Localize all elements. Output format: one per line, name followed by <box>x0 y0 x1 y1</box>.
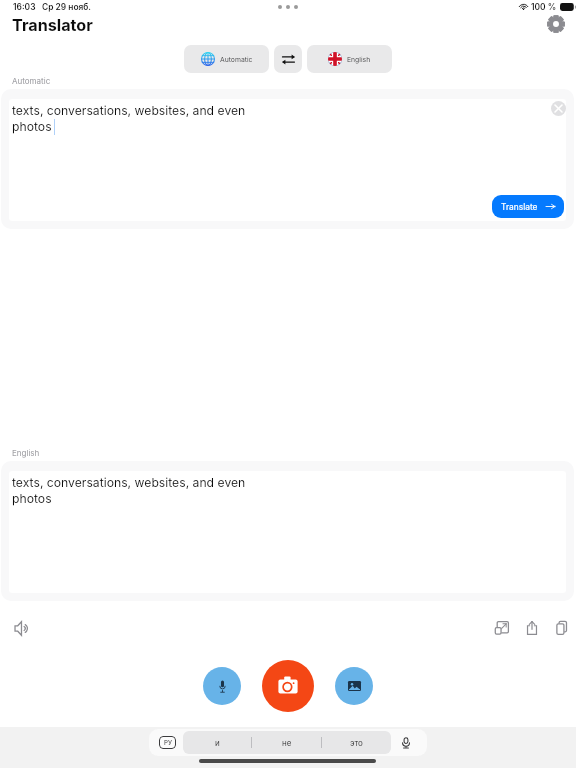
button[interactable]: Clear text <box>551 101 566 116</box>
button[interactable]: Share <box>521 617 543 639</box>
button[interactable]: это <box>322 731 391 754</box>
button[interactable]: Swap languages <box>274 45 302 73</box>
button[interactable]: English <box>307 45 392 73</box>
button[interactable]: Translate <box>492 195 564 218</box>
staticText: Automatic <box>12 76 51 86</box>
button[interactable]: Settings <box>547 15 565 33</box>
staticText: Translate <box>501 202 538 212</box>
staticText: Ср 29 нояб. <box>42 2 92 12</box>
staticText: Automatic <box>220 55 253 63</box>
staticText: 16:03 <box>13 2 36 12</box>
staticText: English <box>12 448 40 458</box>
staticText: texts, conversations, websites, and even… <box>12 475 246 506</box>
staticText: это <box>350 738 363 748</box>
staticText: РУ <box>164 739 172 747</box>
button[interactable]: не <box>252 731 321 754</box>
staticText: English <box>347 55 371 63</box>
staticText: Translator <box>12 15 93 35</box>
button[interactable]: Copy <box>551 617 573 639</box>
staticText: texts, conversations, websites, and even… <box>12 103 246 134</box>
staticText: и <box>215 738 220 748</box>
button[interactable]: Expand <box>491 617 513 639</box>
button[interactable]: Camera <box>262 660 314 712</box>
button[interactable]: Photo <box>335 667 373 705</box>
button[interactable]: Dictate <box>397 734 414 751</box>
button[interactable]: Automatic <box>184 45 269 73</box>
staticText: 100 % <box>531 2 557 12</box>
button[interactable]: Play audio <box>11 617 33 639</box>
button[interactable]: Voice input <box>203 667 241 705</box>
button[interactable]: и <box>183 731 251 754</box>
staticText: не <box>282 738 292 748</box>
button[interactable]: РУ <box>159 736 176 749</box>
